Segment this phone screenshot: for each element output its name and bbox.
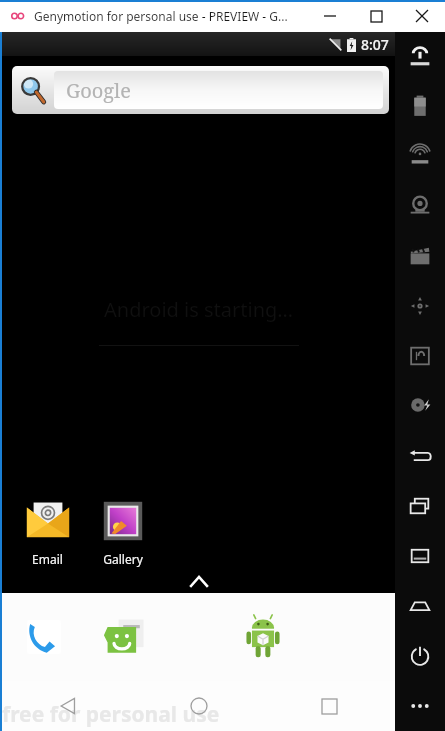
button[interactable]: Recents xyxy=(395,481,445,531)
button[interactable]: GAPPS xyxy=(395,32,445,81)
button[interactable]: Close xyxy=(399,0,445,32)
button[interactable]: D-pad xyxy=(395,281,445,331)
button[interactable]: Minimize xyxy=(307,0,353,32)
button[interactable]: Home xyxy=(395,581,445,631)
staticText: Gallery xyxy=(103,551,143,567)
button[interactable]: Disk IO xyxy=(395,381,445,431)
button[interactable]: Back xyxy=(395,431,445,481)
button[interactable]: Menu xyxy=(395,531,445,581)
button[interactable]: Video xyxy=(395,231,445,281)
button[interactable]: Gallery xyxy=(85,495,160,569)
button[interactable]: Identifiers xyxy=(395,331,445,381)
staticText: Google xyxy=(66,77,132,104)
staticText: free for personal use xyxy=(2,700,220,729)
button[interactable]: Maximize xyxy=(353,0,399,32)
staticText: 8:07 xyxy=(361,35,389,54)
button[interactable]: Battery xyxy=(395,81,445,131)
staticText: Email xyxy=(32,551,63,567)
button[interactable]: Google xyxy=(12,66,389,114)
button[interactable]: GPS xyxy=(395,131,445,181)
button[interactable]: Power xyxy=(395,631,445,681)
button[interactable]: Back xyxy=(2,681,133,731)
button[interactable]: Recents xyxy=(264,681,395,731)
button[interactable]: Apps xyxy=(235,609,291,665)
button[interactable]: Home xyxy=(133,681,264,731)
button[interactable]: More xyxy=(395,681,445,731)
button[interactable]: Phone xyxy=(16,609,72,665)
button[interactable]: Email xyxy=(10,495,85,569)
staticText: Android is starting… xyxy=(104,296,294,323)
button[interactable]: All apps xyxy=(182,571,216,591)
button[interactable]: Messaging xyxy=(98,609,154,665)
button[interactable]: Camera xyxy=(395,181,445,231)
staticText: Genymotion for personal use - PREVIEW - … xyxy=(34,8,288,24)
